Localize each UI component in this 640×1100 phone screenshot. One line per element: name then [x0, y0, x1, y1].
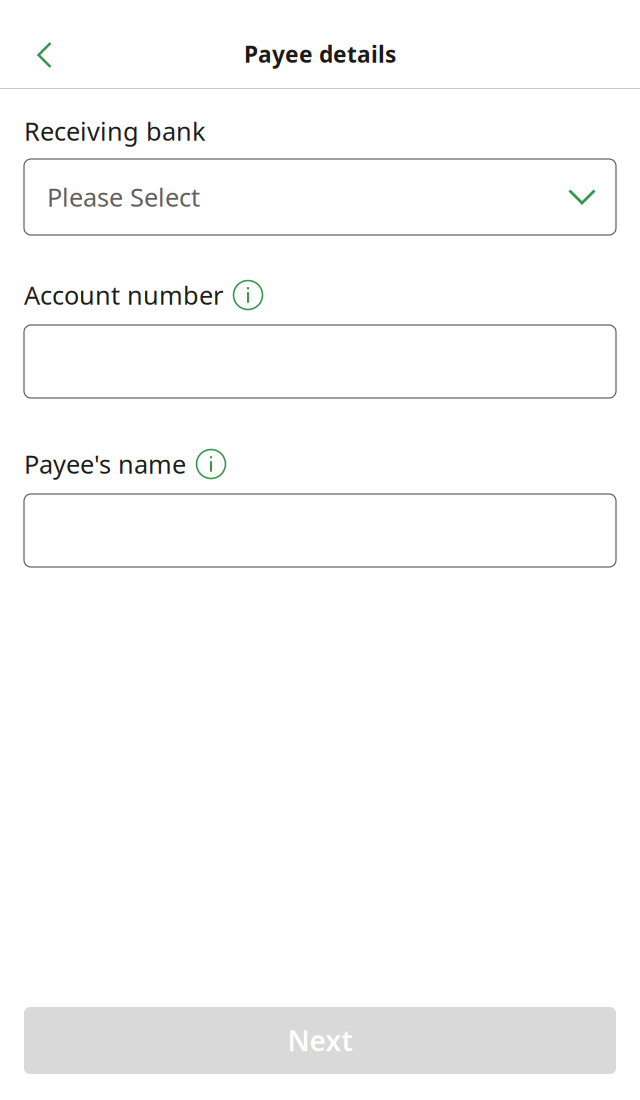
button[interactable]: Payee's name text field [24, 494, 616, 567]
button[interactable]: More information about Account number [233, 280, 263, 310]
button[interactable]: Account number text field [24, 325, 616, 398]
staticText: Next [287, 1022, 352, 1059]
staticText: Payee details [244, 39, 396, 69]
staticText: Please Select [47, 180, 200, 214]
staticText: Receiving bank [24, 114, 206, 148]
button[interactable]: More information about Payee's name [196, 449, 226, 479]
staticText: Payee's name [24, 447, 186, 481]
button[interactable]: Please Select [24, 159, 616, 235]
staticText: Account number [24, 278, 223, 312]
button[interactable]: Next [24, 1007, 616, 1074]
button[interactable]: Back [0, 16, 78, 72]
